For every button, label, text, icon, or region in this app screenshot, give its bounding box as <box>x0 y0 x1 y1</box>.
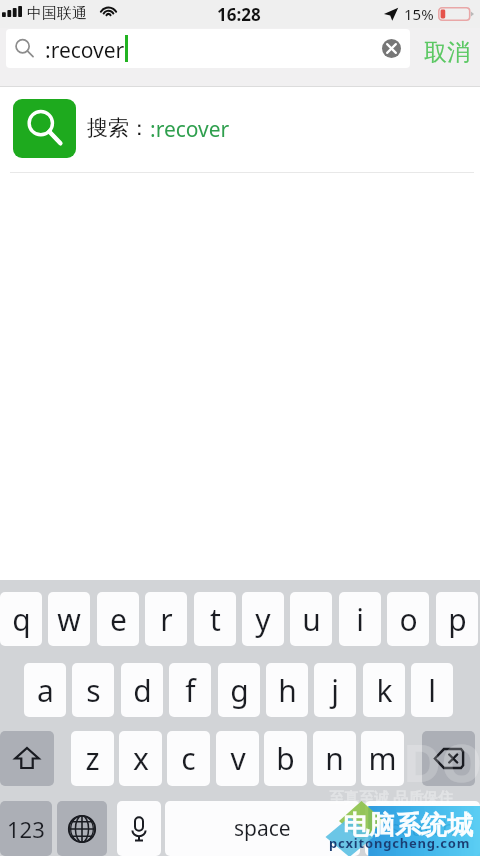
staticText: 电脑系统城 <box>343 809 473 842</box>
staticText: 16:28 <box>217 3 261 26</box>
staticText: t <box>210 599 221 640</box>
staticText: z <box>85 738 100 779</box>
staticText: k <box>376 670 393 711</box>
staticText: j <box>331 670 339 711</box>
button[interactable]: Shift <box>0 731 54 786</box>
staticText: w <box>57 599 81 640</box>
button[interactable]: h <box>266 663 308 717</box>
button[interactable]: d <box>121 663 163 717</box>
staticText: search <box>390 814 455 843</box>
staticText: u <box>302 599 321 640</box>
button[interactable]: p <box>436 592 478 646</box>
staticText: p <box>448 599 467 640</box>
button[interactable]: k <box>363 663 405 717</box>
staticText: pcxitongcheng.com <box>329 834 471 852</box>
staticText: l <box>428 670 436 711</box>
button[interactable]: f <box>169 663 211 717</box>
staticText: n <box>325 738 344 779</box>
staticText: c <box>181 738 196 779</box>
button[interactable]: g <box>218 663 260 717</box>
button[interactable]: a <box>24 663 66 717</box>
button[interactable]: search <box>365 801 480 856</box>
staticText: :recover <box>45 36 125 65</box>
staticText: e <box>110 599 127 640</box>
button[interactable]: c <box>167 731 210 786</box>
staticText: 中国联通 <box>27 4 87 23</box>
button[interactable]: l <box>411 663 453 717</box>
button[interactable]: u <box>290 592 332 646</box>
staticText: d <box>133 670 152 711</box>
button[interactable]: :recover <box>6 29 410 68</box>
button[interactable]: r <box>145 592 187 646</box>
button[interactable]: b <box>264 731 307 786</box>
button[interactable]: n <box>313 731 356 786</box>
staticText: DO <box>403 726 480 797</box>
button[interactable]: Clear text <box>382 39 401 58</box>
staticText: q <box>12 599 31 640</box>
button[interactable]: 搜索： <box>0 87 480 182</box>
staticText: y <box>255 599 271 640</box>
staticText: 取消 <box>424 38 470 67</box>
staticText: o <box>399 599 418 640</box>
button[interactable]: Dictation <box>117 801 161 856</box>
button[interactable]: Next keyboard <box>57 801 107 856</box>
button[interactable]: space <box>165 801 360 856</box>
button[interactable]: e <box>97 592 139 646</box>
button[interactable]: m <box>361 731 404 786</box>
staticText: b <box>276 738 295 779</box>
staticText: a <box>37 670 54 711</box>
staticText: :recover <box>150 115 230 144</box>
button[interactable]: Backspace <box>422 731 475 786</box>
staticText: 15% <box>404 4 434 24</box>
button[interactable]: q <box>0 592 42 646</box>
staticText: g <box>230 670 249 711</box>
button[interactable]: z <box>71 731 114 786</box>
button[interactable]: y <box>242 592 284 646</box>
staticText: v <box>230 738 246 779</box>
button[interactable]: w <box>48 592 90 646</box>
staticText: space <box>234 814 291 843</box>
staticText: i <box>356 599 364 640</box>
staticText: 至真至诚 品质保住 <box>329 787 453 807</box>
button[interactable]: x <box>119 731 162 786</box>
staticText: s <box>86 670 101 711</box>
staticText: h <box>278 670 297 711</box>
button[interactable]: j <box>314 663 356 717</box>
staticText: x <box>133 738 149 779</box>
button[interactable]: t <box>194 592 236 646</box>
button[interactable]: o <box>387 592 429 646</box>
button[interactable]: s <box>72 663 114 717</box>
staticText: 123 <box>7 814 45 844</box>
staticText: r <box>160 599 173 640</box>
staticText: 搜索： <box>87 115 150 141</box>
button[interactable]: 取消 <box>414 30 480 75</box>
button[interactable]: 123 <box>0 801 52 856</box>
staticText: f <box>185 670 196 711</box>
button[interactable]: i <box>339 592 381 646</box>
button[interactable]: v <box>216 731 259 786</box>
staticText: m <box>368 738 397 779</box>
